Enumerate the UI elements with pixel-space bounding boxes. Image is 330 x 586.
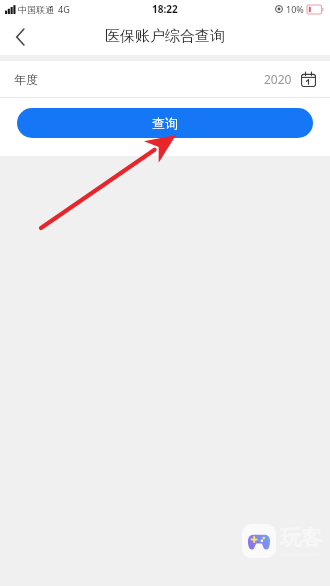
staticText: 查询 [152, 115, 178, 131]
staticText: 玩客 [280, 525, 322, 551]
staticText: 4G [58, 3, 70, 15]
other: Pick year [301, 72, 316, 87]
button[interactable]: 年度 [0, 61, 330, 97]
button[interactable]: Back [0, 18, 40, 55]
button[interactable]: 查询 [17, 108, 313, 138]
staticText: 10% [286, 3, 304, 15]
staticText: 年度 [14, 72, 38, 87]
staticText: 2020 [264, 71, 292, 87]
staticText: 中国联通 [18, 4, 54, 15]
staticText: 18:22 [152, 2, 178, 16]
staticText: 医保账户综合查询 [105, 27, 225, 46]
